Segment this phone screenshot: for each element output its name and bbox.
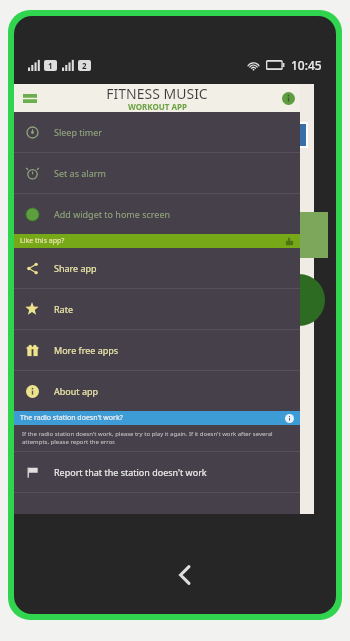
button[interactable]: Add widget to home screen (14, 194, 300, 234)
staticText: 1 (48, 60, 53, 71)
staticText: 2 (82, 60, 87, 71)
button[interactable]: Sleep timer (14, 112, 300, 152)
staticText: Sleep timer (54, 126, 103, 138)
button[interactable]: Report that the station doesn't work (14, 452, 300, 492)
button[interactable]: Share app (14, 248, 300, 288)
staticText: Share app (54, 262, 97, 274)
staticText: WORKOUT APP (128, 101, 187, 110)
staticText: Like this app? (20, 236, 65, 246)
staticText: Report that the station doesn't work (54, 466, 207, 478)
button[interactable]: About app (14, 371, 300, 411)
staticText: Rate (54, 303, 73, 315)
staticText: FITNESS MUSIC (106, 84, 208, 103)
button[interactable]: More free apps (14, 330, 300, 370)
staticText: About app (54, 385, 99, 397)
button[interactable]: Play (273, 274, 325, 326)
button[interactable]: Back (161, 551, 209, 599)
staticText: More free apps (54, 344, 119, 356)
staticText: Add widget to home screen (54, 208, 171, 220)
staticText: If the radio station doesn't work, pleas… (22, 430, 292, 446)
button[interactable]: Set as alarm (14, 153, 300, 193)
button[interactable]: Rate (14, 289, 300, 329)
staticText: Set as alarm (54, 167, 106, 179)
button[interactable]: Like this app? (14, 234, 300, 248)
button[interactable]: The radio station doesn't work? (14, 411, 300, 425)
button[interactable]: Menu (18, 86, 42, 110)
staticText: 10:45 (291, 57, 322, 73)
staticText: The radio station doesn't work? (20, 413, 123, 423)
button[interactable]: Info (278, 88, 298, 108)
